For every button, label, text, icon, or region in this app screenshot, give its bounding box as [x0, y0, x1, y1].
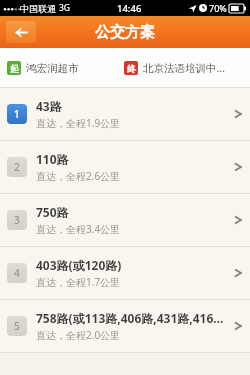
button[interactable]: 终 — [124, 61, 243, 75]
staticText: 3 — [14, 213, 20, 227]
button[interactable]: 3 — [0, 194, 250, 246]
button[interactable]: 4 — [0, 247, 250, 299]
button[interactable]: 2 — [0, 141, 250, 193]
staticText: 公交方案 — [95, 23, 155, 42]
staticText: 110路 — [36, 151, 69, 167]
staticText: 5 — [14, 319, 20, 333]
staticText: 2 — [14, 160, 20, 174]
button[interactable]: 起 — [7, 61, 120, 75]
staticText: 起 — [10, 63, 19, 74]
staticText: 1 — [14, 107, 20, 121]
staticText: 直达，全程1.7公里 — [36, 275, 121, 289]
staticText: 14:46 — [117, 2, 142, 15]
staticText: 70% — [209, 2, 227, 14]
staticText: 终 — [127, 63, 136, 74]
button[interactable]: 返回 — [6, 21, 36, 43]
staticText: 直达，全程3.4公里 — [36, 222, 121, 236]
staticText: 43路 — [36, 98, 62, 114]
staticText: 直达，全程1.9公里 — [36, 116, 121, 130]
staticText: 3G — [59, 2, 71, 14]
staticText: 鸿宏润超市 — [26, 62, 79, 75]
staticText: 直达，全程2.6公里 — [36, 169, 121, 183]
staticText: 403路(或120路) — [36, 257, 122, 273]
button[interactable]: 5 — [0, 300, 250, 352]
button[interactable]: 1 — [0, 88, 250, 140]
staticText: 北京法语培训中... — [143, 61, 225, 75]
staticText: 4 — [14, 266, 20, 280]
staticText: 750路 — [36, 204, 69, 220]
staticText: 直达，全程2.0公里 — [36, 328, 121, 342]
staticText: 中国联通 — [20, 3, 56, 14]
staticText: 758路(或113路,406路,431路,416… — [36, 310, 224, 326]
